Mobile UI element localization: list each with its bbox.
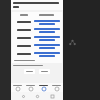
button[interactable]: [24, 69, 35, 74]
button[interactable]: Tab 1: [11, 83, 24, 92]
button[interactable]: [39, 69, 50, 74]
button[interactable]: [12, 42, 62, 50]
button[interactable]: [12, 18, 62, 26]
button[interactable]: Back: [20, 93, 26, 99]
button[interactable]: [12, 50, 62, 58]
button[interactable]: Tab 4: [50, 83, 63, 92]
button[interactable]: Tab 2: [24, 83, 37, 92]
button[interactable]: [12, 26, 62, 34]
button[interactable]: Share: [69, 39, 76, 46]
button[interactable]: Recents: [49, 93, 55, 99]
button[interactable]: Home: [34, 93, 40, 99]
button[interactable]: Tab 3: [37, 83, 50, 92]
button[interactable]: [12, 34, 62, 42]
